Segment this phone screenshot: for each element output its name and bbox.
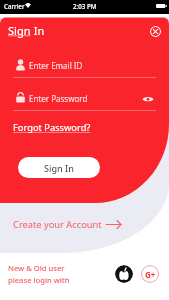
staticText: G+ <box>145 269 156 280</box>
staticText: Forgot Password? <box>13 121 91 134</box>
staticText: In <box>31 23 45 38</box>
staticText: New & Old user <box>8 263 65 273</box>
staticText: Create your Account <box>13 218 102 231</box>
button[interactable]: Forgot Password? <box>13 121 91 134</box>
staticText: Enter Email ID <box>29 60 83 71</box>
button[interactable]: Sign <box>8 23 45 38</box>
staticText: Sign <box>8 23 31 38</box>
staticText: please login with <box>8 275 70 285</box>
staticText: Carrier <box>4 2 25 10</box>
staticText: Sign In <box>44 162 74 174</box>
button[interactable]: Sign in with Google Plus <box>141 265 159 283</box>
button[interactable]: Close <box>150 26 161 37</box>
button[interactable]: Create your Account <box>13 218 121 231</box>
button[interactable]: Show password <box>141 93 155 104</box>
staticText: Enter Password <box>29 93 88 104</box>
button[interactable]: Sign in with Apple <box>115 265 133 283</box>
button[interactable]: Sign In <box>18 157 100 178</box>
staticText: 2:03 PM <box>73 2 97 10</box>
